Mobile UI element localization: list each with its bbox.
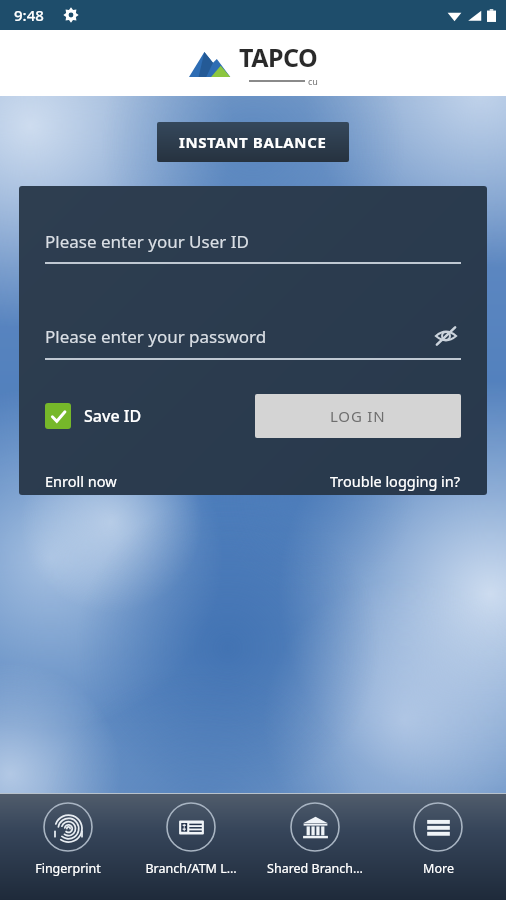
button[interactable]: Branch/ATM L… — [136, 802, 246, 877]
staticText: More — [423, 860, 454, 877]
staticText: Trouble logging in? — [330, 471, 461, 491]
staticText: TAPCO — [239, 40, 318, 74]
button[interactable]: Save ID — [45, 403, 142, 429]
staticText: 9:48 — [14, 5, 44, 25]
button[interactable]: INSTANT BALANCE — [157, 122, 349, 162]
button[interactable]: More — [383, 802, 493, 877]
staticText: Please enter your password — [45, 325, 431, 348]
staticText: cu — [308, 75, 318, 87]
button[interactable]: Show password — [431, 321, 461, 351]
staticText: LOG IN — [330, 406, 386, 426]
staticText: Shared Branch… — [267, 860, 363, 877]
button[interactable]: Trouble logging in? — [330, 471, 461, 491]
staticText: Please enter your User ID — [45, 230, 249, 253]
staticText: Branch/ATM L… — [145, 860, 237, 877]
button[interactable]: Shared Branch… — [260, 802, 370, 877]
button[interactable]: LOG IN — [255, 394, 461, 438]
staticText: Enroll now — [45, 471, 117, 491]
staticText: Save ID — [84, 405, 142, 427]
staticText: Fingerprint — [35, 860, 101, 877]
button[interactable]: Enroll now — [45, 471, 117, 491]
button[interactable]: Fingerprint — [13, 802, 123, 877]
staticText: INSTANT BALANCE — [179, 132, 327, 152]
